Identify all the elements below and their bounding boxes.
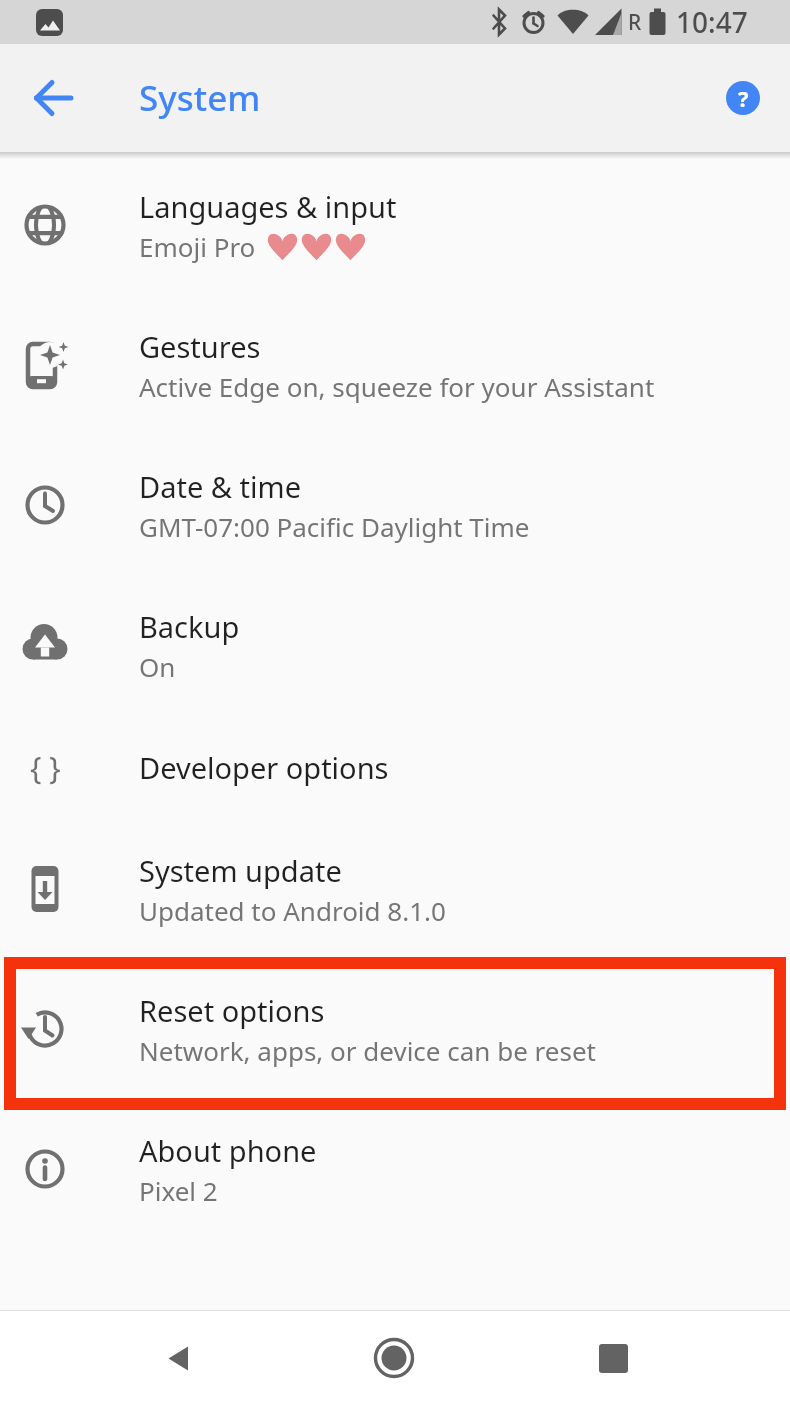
- staticText: Emoji Pro: [139, 229, 263, 264]
- button[interactable]: Reset options: [0, 959, 790, 1099]
- button[interactable]: Backup: [0, 575, 790, 715]
- staticText: R: [628, 8, 642, 37]
- staticText: GMT-07:00 Pacific Daylight Time: [139, 509, 530, 544]
- staticText: { }: [30, 747, 61, 788]
- staticText: Updated to Android 8.1.0: [139, 893, 446, 928]
- staticText: Network, apps, or device can be reset: [139, 1033, 596, 1068]
- staticText: System: [139, 74, 261, 122]
- staticText: Reset options: [139, 991, 325, 1030]
- button[interactable]: [154, 1334, 202, 1382]
- staticText: Active Edge on, squeeze for your Assista…: [139, 369, 655, 404]
- button[interactable]: About phone: [0, 1099, 790, 1239]
- button[interactable]: Gestures: [0, 295, 790, 435]
- button[interactable]: [589, 1334, 637, 1382]
- button[interactable]: Languages & input: [0, 155, 790, 295]
- button[interactable]: Date & time: [0, 435, 790, 575]
- button[interactable]: { }: [0, 715, 790, 819]
- staticText: Gestures: [139, 327, 261, 366]
- button[interactable]: [0, 44, 108, 152]
- staticText: Pixel 2: [139, 1173, 218, 1208]
- staticText: Developer options: [139, 748, 389, 787]
- staticText: 10:47: [676, 3, 748, 41]
- staticText: System update: [139, 851, 342, 890]
- button[interactable]: System update: [0, 819, 790, 959]
- staticText: Languages & input: [139, 187, 397, 226]
- staticText: ?: [738, 83, 749, 113]
- staticText: Date & time: [139, 467, 301, 506]
- button[interactable]: [370, 1334, 418, 1382]
- button[interactable]: ?: [726, 81, 760, 115]
- staticText: On: [139, 649, 176, 684]
- staticText: About phone: [139, 1131, 317, 1170]
- staticText: Backup: [139, 607, 240, 646]
